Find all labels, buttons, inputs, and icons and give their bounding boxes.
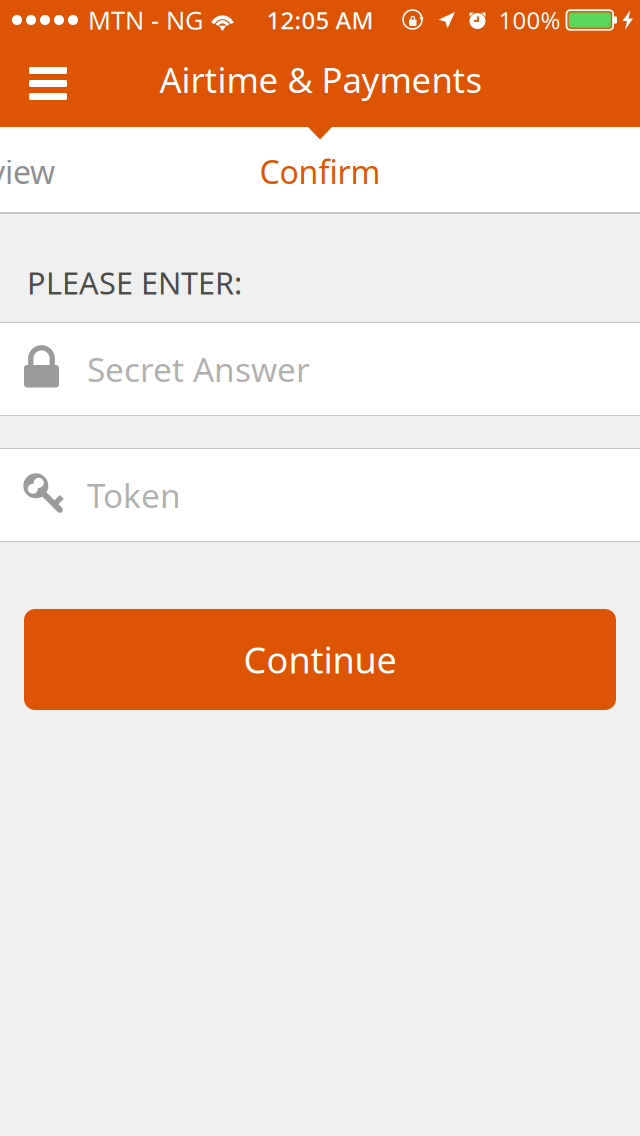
button[interactable]: Review [0,127,145,212]
staticText: 100% [498,4,560,36]
button[interactable]: Token [0,449,640,541]
staticText: Confirm [259,150,380,193]
staticText: view [0,150,55,193]
button[interactable]: Menu [15,51,81,116]
staticText: Secret Answer [87,347,310,391]
button[interactable]: Continue [24,609,616,710]
staticText: Token [87,473,181,517]
staticText: Airtime & Payments [159,56,482,102]
staticText: Continue [243,636,396,683]
button[interactable]: Confirm [215,127,425,212]
staticText: MTN - NG [88,3,203,37]
staticText: 12:05 AM [266,4,373,36]
staticText: PLEASE ENTER: [27,262,242,303]
button[interactable]: Secret Answer [0,323,640,415]
